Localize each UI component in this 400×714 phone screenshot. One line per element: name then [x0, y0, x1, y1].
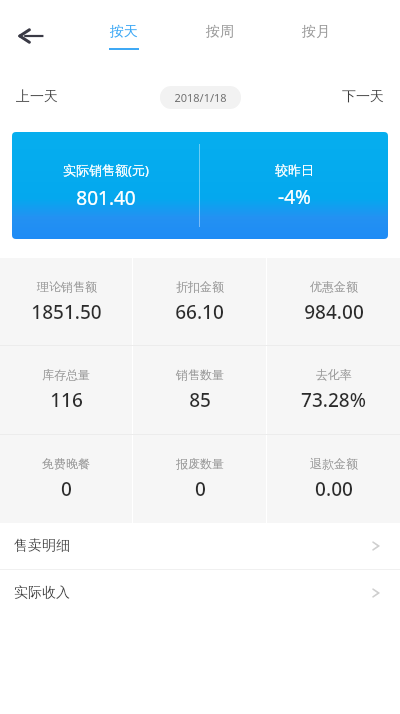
staticText: 销售数量 — [176, 367, 224, 382]
staticText: 较昨日 — [275, 162, 314, 178]
button[interactable]: 按月 — [268, 0, 364, 72]
staticText: 0 — [61, 476, 72, 502]
button[interactable]: 报废数量 — [133, 435, 266, 523]
button[interactable]: 售卖明细 — [0, 523, 400, 569]
button[interactable]: 折扣金额 — [133, 258, 266, 345]
staticText: 实际收入 — [14, 584, 70, 602]
staticText: 85 — [189, 387, 211, 413]
staticText: 上一天 — [16, 88, 58, 106]
button[interactable]: 上一天 — [0, 72, 74, 122]
button[interactable]: 库存总量 — [0, 346, 132, 434]
button[interactable]: 按周 — [172, 0, 268, 72]
button[interactable]: 按天 — [76, 0, 172, 72]
staticText: 实际销售额(元) — [63, 161, 149, 179]
staticText: 按月 — [302, 23, 330, 41]
staticText: 报废数量 — [176, 456, 224, 471]
staticText: 下一天 — [342, 88, 384, 106]
staticText: 折扣金额 — [176, 279, 224, 294]
staticText: 0 — [195, 476, 206, 502]
staticText: 退款金额 — [310, 456, 358, 471]
staticText: 理论销售额 — [37, 279, 97, 294]
staticText: 2018/1/18 — [174, 90, 227, 105]
button[interactable]: 优惠金额 — [267, 258, 400, 345]
staticText: 0.00 — [315, 476, 353, 502]
button[interactable]: 去化率 — [267, 346, 400, 434]
staticText: 按天 — [110, 23, 138, 41]
button[interactable]: 退款金额 — [267, 435, 400, 523]
staticText: -4% — [278, 184, 311, 210]
staticText: 售卖明细 — [14, 537, 70, 555]
button[interactable]: 免费晚餐 — [0, 435, 132, 523]
staticText: 66.10 — [175, 299, 224, 325]
staticText: 库存总量 — [42, 367, 90, 382]
staticText: 984.00 — [304, 299, 364, 325]
staticText: 73.28% — [301, 387, 366, 413]
staticText: 801.40 — [76, 185, 136, 211]
button[interactable]: 理论销售额 — [0, 258, 132, 345]
button[interactable]: Back — [6, 10, 58, 62]
button[interactable]: 销售数量 — [133, 346, 266, 434]
button[interactable]: 实际收入 — [0, 570, 400, 616]
staticText: 优惠金额 — [310, 279, 358, 294]
button[interactable]: 实际销售额(元) — [12, 132, 388, 239]
staticText: 去化率 — [316, 367, 352, 382]
staticText: 116 — [50, 387, 83, 413]
staticText: 免费晚餐 — [42, 456, 90, 471]
staticText: 按周 — [206, 23, 234, 41]
button[interactable]: 下一天 — [326, 72, 400, 122]
staticText: 1851.50 — [31, 299, 102, 325]
button[interactable]: 2018/1/18 — [160, 86, 241, 109]
